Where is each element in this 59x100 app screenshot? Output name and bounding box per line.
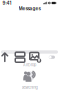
staticText: example.com — [2, 50, 24, 54]
button[interactable]: Photos — [33, 55, 37, 59]
button[interactable]: Share — [3, 55, 7, 59]
staticText: Messages — [18, 6, 40, 11]
button[interactable]: Contact — [24, 71, 34, 81]
staticText: AirDrop — [23, 63, 36, 67]
staticText: Searching — [21, 85, 37, 90]
staticText: 9:41 — [2, 0, 11, 6]
button[interactable]: Library — [18, 55, 22, 59]
button[interactable]: Toggle — [49, 56, 55, 59]
